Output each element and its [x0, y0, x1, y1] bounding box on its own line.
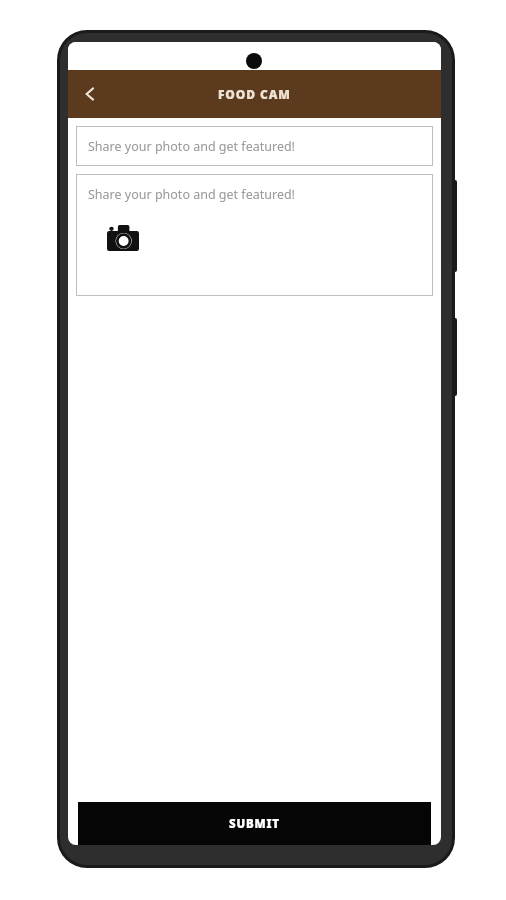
staticText: SUBMIT [229, 816, 280, 832]
button[interactable]: Share your photo and get featured! [76, 126, 433, 166]
button[interactable]: Take photo [106, 222, 140, 252]
button[interactable]: SUBMIT [78, 802, 431, 845]
staticText: FOOD CAM [218, 86, 291, 102]
button[interactable]: Back [68, 72, 112, 116]
staticText: Share your photo and get featured! [88, 138, 295, 155]
staticText: Share your photo and get featured! [88, 186, 295, 203]
